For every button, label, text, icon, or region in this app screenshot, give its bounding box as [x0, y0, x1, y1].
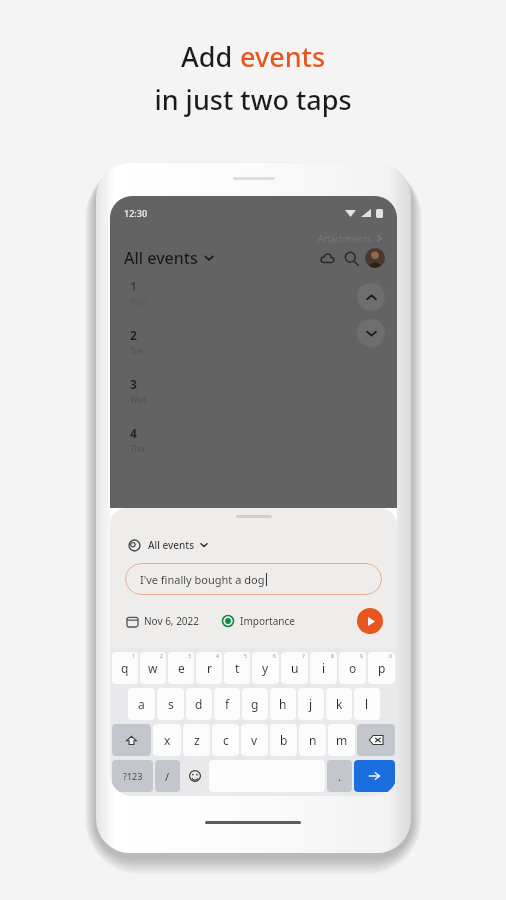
button[interactable]: q — [112, 652, 138, 684]
button[interactable]: Account — [365, 248, 385, 268]
staticText: Thu — [130, 443, 145, 454]
staticText: Add — [181, 38, 240, 75]
button[interactable]: Enter — [354, 760, 395, 792]
staticText: t — [235, 660, 240, 676]
button[interactable]: . — [327, 760, 352, 792]
staticText: 0 — [389, 653, 392, 660]
button[interactable]: Backspace — [357, 724, 395, 756]
button[interactable]: Nov 6, 2022 — [127, 614, 200, 628]
button[interactable]: h — [270, 688, 296, 720]
staticText: b — [280, 732, 288, 748]
button[interactable]: f — [214, 688, 240, 720]
button[interactable]: s — [157, 688, 184, 720]
staticText: Tue — [130, 345, 144, 356]
button[interactable]: Send — [357, 608, 383, 634]
button[interactable]: x — [153, 724, 181, 756]
staticText: k — [336, 696, 343, 712]
staticText: x — [164, 732, 171, 748]
staticText: u — [291, 660, 299, 676]
staticText: l — [365, 696, 369, 712]
button[interactable]: w — [140, 652, 166, 684]
staticText: e — [178, 660, 185, 676]
button[interactable]: n — [299, 724, 326, 756]
staticText: 1 — [130, 278, 137, 294]
staticText: Nov 6, 2022 — [144, 614, 200, 628]
staticText: g — [251, 696, 259, 712]
staticText: All events — [148, 538, 195, 552]
button[interactable]: j — [298, 688, 324, 720]
staticText: i — [322, 660, 326, 676]
button[interactable]: r — [196, 652, 222, 684]
staticText: . — [338, 769, 341, 784]
staticText: c — [223, 732, 229, 748]
button[interactable]: g — [242, 688, 268, 720]
button[interactable]: t — [224, 652, 250, 684]
button[interactable]: Attachments — [318, 232, 383, 244]
staticText: o — [349, 660, 357, 676]
button[interactable]: e — [168, 652, 194, 684]
staticText: events — [240, 38, 326, 75]
staticText: 4 — [216, 653, 219, 660]
staticText: 4 — [130, 425, 137, 441]
staticText: Importance — [240, 614, 295, 628]
button[interactable]: Importance — [222, 614, 295, 628]
button[interactable]: / — [155, 760, 180, 792]
button[interactable]: i — [310, 652, 337, 684]
button[interactable]: m — [328, 724, 355, 756]
button[interactable]: 2 — [110, 327, 397, 376]
staticText: z — [194, 732, 200, 748]
staticText: 5 — [244, 653, 247, 660]
staticText: q — [121, 660, 129, 676]
button[interactable]: a — [128, 688, 155, 720]
staticText: y — [262, 660, 269, 676]
staticText: 12:30 — [124, 207, 148, 219]
button[interactable]: l — [354, 688, 380, 720]
button[interactable]: k — [326, 688, 352, 720]
staticText: 6 — [273, 653, 276, 660]
staticText: 2 — [130, 327, 137, 343]
staticText: h — [279, 696, 287, 712]
staticText: w — [148, 660, 158, 676]
button[interactable]: All events — [124, 247, 214, 269]
staticText: / — [165, 769, 170, 784]
button[interactable]: u — [281, 652, 308, 684]
staticText: p — [378, 660, 386, 676]
staticText: 9 — [360, 653, 363, 660]
button[interactable]: Next — [357, 319, 385, 347]
staticText: n — [309, 732, 317, 748]
staticText: in just two taps — [154, 81, 352, 118]
button[interactable]: All events — [128, 538, 208, 552]
button[interactable]: Cloud sync — [315, 246, 339, 270]
button[interactable]: p — [368, 652, 395, 684]
button[interactable]: v — [241, 724, 268, 756]
button[interactable]: z — [183, 724, 210, 756]
button[interactable]: d — [186, 688, 212, 720]
button[interactable]: Emoji — [182, 760, 207, 792]
button[interactable]: Shift — [112, 724, 151, 756]
staticText: 7 — [302, 653, 305, 660]
button[interactable]: 1 — [110, 278, 397, 327]
staticText: v — [251, 732, 258, 748]
staticText: All events — [124, 247, 198, 269]
staticText: m — [336, 732, 348, 748]
button[interactable]: c — [212, 724, 239, 756]
button[interactable]: b — [270, 724, 297, 756]
staticText: r — [207, 660, 212, 676]
staticText: f — [225, 696, 230, 712]
button[interactable]: Previous — [357, 283, 385, 311]
staticText: ?123 — [123, 770, 143, 782]
button[interactable]: Search — [339, 246, 363, 270]
button[interactable]: I've finally bought a dog — [125, 563, 382, 595]
staticText: Attachments — [318, 232, 372, 244]
button[interactable]: o — [339, 652, 366, 684]
button[interactable]: y — [252, 652, 279, 684]
staticText: I've finally bought a dog — [140, 572, 265, 587]
staticText: a — [138, 696, 145, 712]
button[interactable]: ?123 — [112, 760, 153, 792]
staticText: 8 — [331, 653, 334, 660]
staticText: d — [195, 696, 203, 712]
